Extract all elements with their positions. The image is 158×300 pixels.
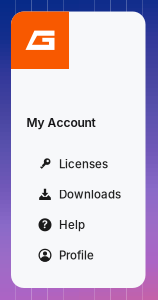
button[interactable]: Licenses	[11, 149, 145, 179]
button[interactable]: Profile	[11, 240, 145, 270]
button[interactable]: ?	[11, 210, 145, 240]
staticText: ?	[42, 218, 48, 231]
staticText: My Account	[27, 115, 96, 130]
staticText: Profile	[59, 248, 94, 262]
staticText: Licenses	[59, 157, 108, 171]
button[interactable]: Downloads	[11, 179, 145, 210]
staticText: Help	[59, 218, 85, 232]
staticText: Downloads	[59, 187, 121, 201]
